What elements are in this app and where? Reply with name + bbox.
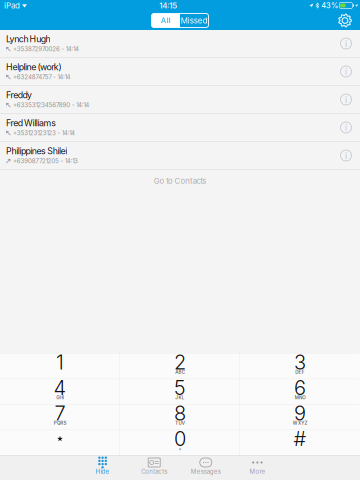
staticText: Fred Williams [6,118,56,128]
staticText: +353123123123 - 14:14 [13,129,75,137]
staticText: All [161,16,171,25]
staticText: GHI [56,395,64,400]
staticText: Contacts [141,468,167,475]
button[interactable]: 3 [240,353,360,378]
staticText: iPad [4,1,20,10]
staticText: i [345,94,347,105]
staticText: +6324874757 - 14:14 [13,73,71,81]
staticText: Hide [96,468,110,475]
button[interactable]: 7 [0,404,120,429]
staticText: Messages [191,468,221,475]
button[interactable] [0,429,120,455]
button[interactable]: Missed [180,13,208,27]
staticText: ABC [175,369,185,375]
staticText: i [345,38,347,49]
staticText: Freddy [6,90,32,100]
button[interactable]: Contacts [128,455,180,480]
button[interactable]: Messages [180,455,232,480]
button[interactable]: Fred Williams [0,114,360,142]
staticText: 2 [174,350,186,374]
button[interactable]: 0 [120,429,240,455]
staticText: i [345,122,347,133]
button[interactable]: 8 [120,404,240,429]
staticText: Philippines Shilei [6,146,67,156]
staticText: +639087721205 - 14:13 [13,157,78,165]
button[interactable]: Lynch Hugh [0,30,360,58]
staticText: 5 [174,376,186,400]
staticText: 14:15 [159,1,177,10]
button[interactable]: All [151,13,180,27]
staticText: JKL [175,395,185,400]
button[interactable]: Settings [334,11,360,30]
staticText: Lynch Hugh [6,34,50,44]
button[interactable]: Philippines Shilei [0,142,360,170]
staticText: 7 [54,401,65,425]
button[interactable]: # [240,429,360,455]
staticText: More [249,468,265,475]
staticText: 6 [294,376,306,400]
staticText: # [293,427,306,451]
staticText: 3 [294,350,306,374]
staticText: PQRS [54,420,66,426]
staticText: 4 [53,376,66,400]
button[interactable]: More [232,455,283,480]
button[interactable]: 9 [240,404,360,429]
button[interactable]: Hide [77,455,128,480]
staticText: WXYZ [293,420,307,426]
button[interactable]: 5 [120,378,240,404]
staticText: MNO [295,395,305,400]
staticText: 1 [56,350,64,374]
staticText: 9 [294,401,306,425]
staticText: Missed [181,16,208,25]
button[interactable]: 6 [240,378,360,404]
staticText: Helpline (work) [6,62,61,72]
staticText: +633531234567890 - 14:14 [13,101,89,109]
staticText: i [345,150,347,161]
button[interactable]: Go to Contacts [154,170,206,192]
button[interactable]: Freddy [0,86,360,114]
button[interactable]: Helpline (work) [0,58,360,86]
staticText: i [345,66,347,77]
staticText: +353872970026 - 14:14 [13,45,79,53]
button[interactable]: 4 [0,378,120,404]
staticText: 43% [321,1,338,10]
staticText: DEF [295,369,305,375]
staticText: Go to Contacts [154,176,206,186]
staticText: 0 [174,427,186,451]
button[interactable]: 2 [120,353,240,378]
staticText: TUV [175,420,185,426]
button[interactable]: 1 [0,353,120,378]
staticText: 8 [174,401,186,425]
staticText: + [178,446,181,451]
